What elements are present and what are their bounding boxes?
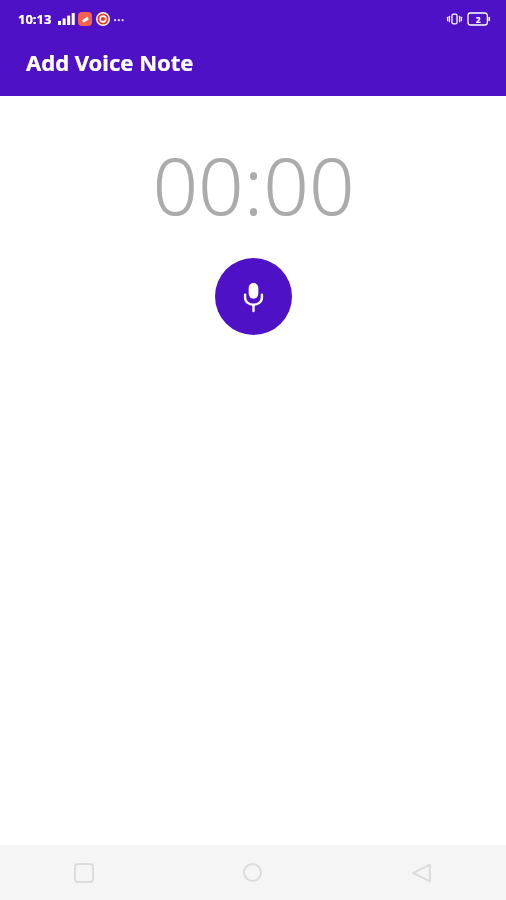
button[interactable]: Start recording bbox=[215, 258, 292, 335]
staticText: 10:13 bbox=[18, 10, 52, 28]
staticText: 2 bbox=[476, 14, 481, 25]
staticText: Add Voice Note bbox=[26, 47, 194, 77]
staticText: 00:00 bbox=[152, 129, 355, 238]
